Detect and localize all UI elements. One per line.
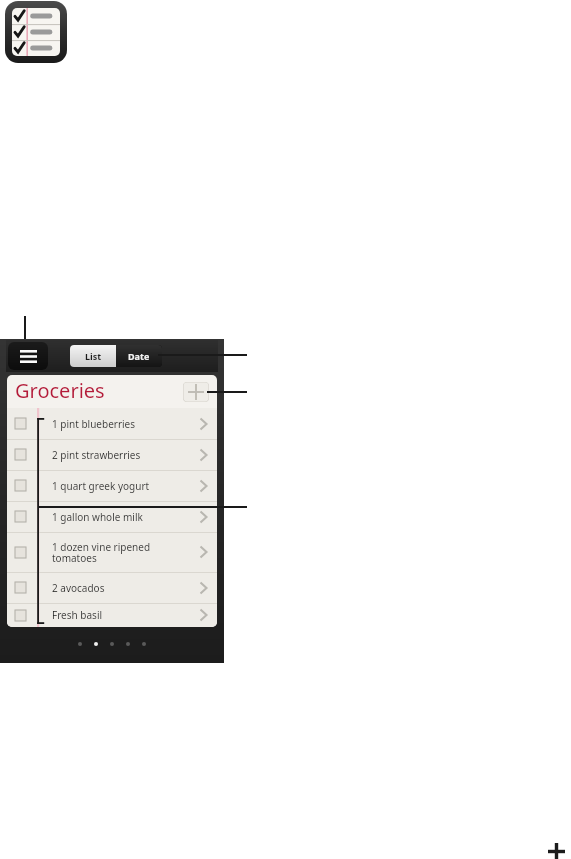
staticText: List [85, 350, 102, 362]
button[interactable]: Toggle 2 avocados [7, 572, 217, 603]
button[interactable]: Reminders app icon [5, 1, 67, 67]
staticText: 1 pint blueberries [52, 417, 136, 431]
button[interactable]: Toggle Fresh basil [15, 610, 26, 621]
button[interactable]: Toggle 1 pint blueberries [7, 408, 217, 439]
staticText: 2 pint strawberries [52, 448, 141, 462]
button[interactable]: Toggle 1 quart greek yogurt [7, 470, 217, 501]
button[interactable]: Menu [8, 342, 48, 370]
button[interactable]: Toggle 2 pint strawberries [15, 449, 26, 460]
button[interactable]: Toggle 1 gallon whole milk [7, 501, 217, 532]
staticText: 2 avocados [52, 581, 105, 595]
button[interactable]: Toggle 1 gallon whole milk [15, 511, 26, 522]
button[interactable]: Toggle 2 pint strawberries [7, 439, 217, 470]
button[interactable]: Toggle 1 quart greek yogurt [15, 480, 26, 491]
staticText: Groceries [15, 377, 105, 404]
staticText: 1 dozen vine ripened tomatoes [52, 540, 151, 565]
button[interactable]: Toggle 1 pint blueberries [15, 418, 26, 429]
button[interactable]: Add reminder [183, 382, 209, 402]
button[interactable]: Toggle 1 dozen vine ripened tomatoes [7, 532, 217, 572]
button[interactable]: Toggle 1 dozen vine ripened tomatoes [15, 547, 26, 558]
staticText: Fresh basil [52, 608, 103, 622]
button[interactable]: Toggle 2 avocados [15, 582, 26, 593]
button[interactable]: List [70, 345, 116, 367]
button[interactable]: Date [116, 345, 162, 367]
button[interactable]: Toggle Fresh basil [7, 603, 217, 627]
staticText: 1 gallon whole milk [52, 510, 143, 524]
staticText: Date [128, 350, 150, 362]
staticText: 1 quart greek yogurt [52, 479, 150, 493]
